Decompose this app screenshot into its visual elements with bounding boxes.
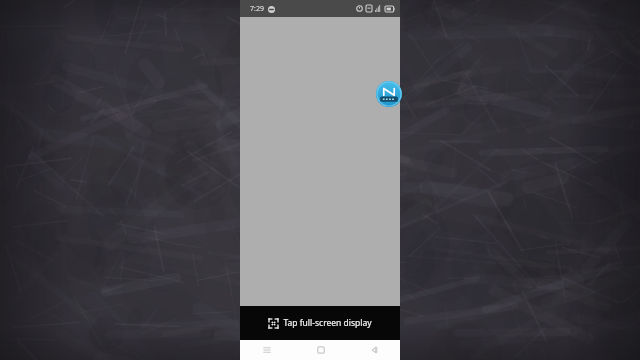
button[interactable]: Home	[294, 340, 347, 360]
button[interactable]: Floating shortcut	[376, 81, 402, 107]
button[interactable]: Tap full-screen display	[240, 306, 400, 340]
button[interactable]: Recents	[240, 340, 294, 360]
staticText: Tap full-screen display	[283, 317, 372, 329]
staticText: 7:29	[250, 4, 264, 14]
button[interactable]: Back	[347, 340, 400, 360]
